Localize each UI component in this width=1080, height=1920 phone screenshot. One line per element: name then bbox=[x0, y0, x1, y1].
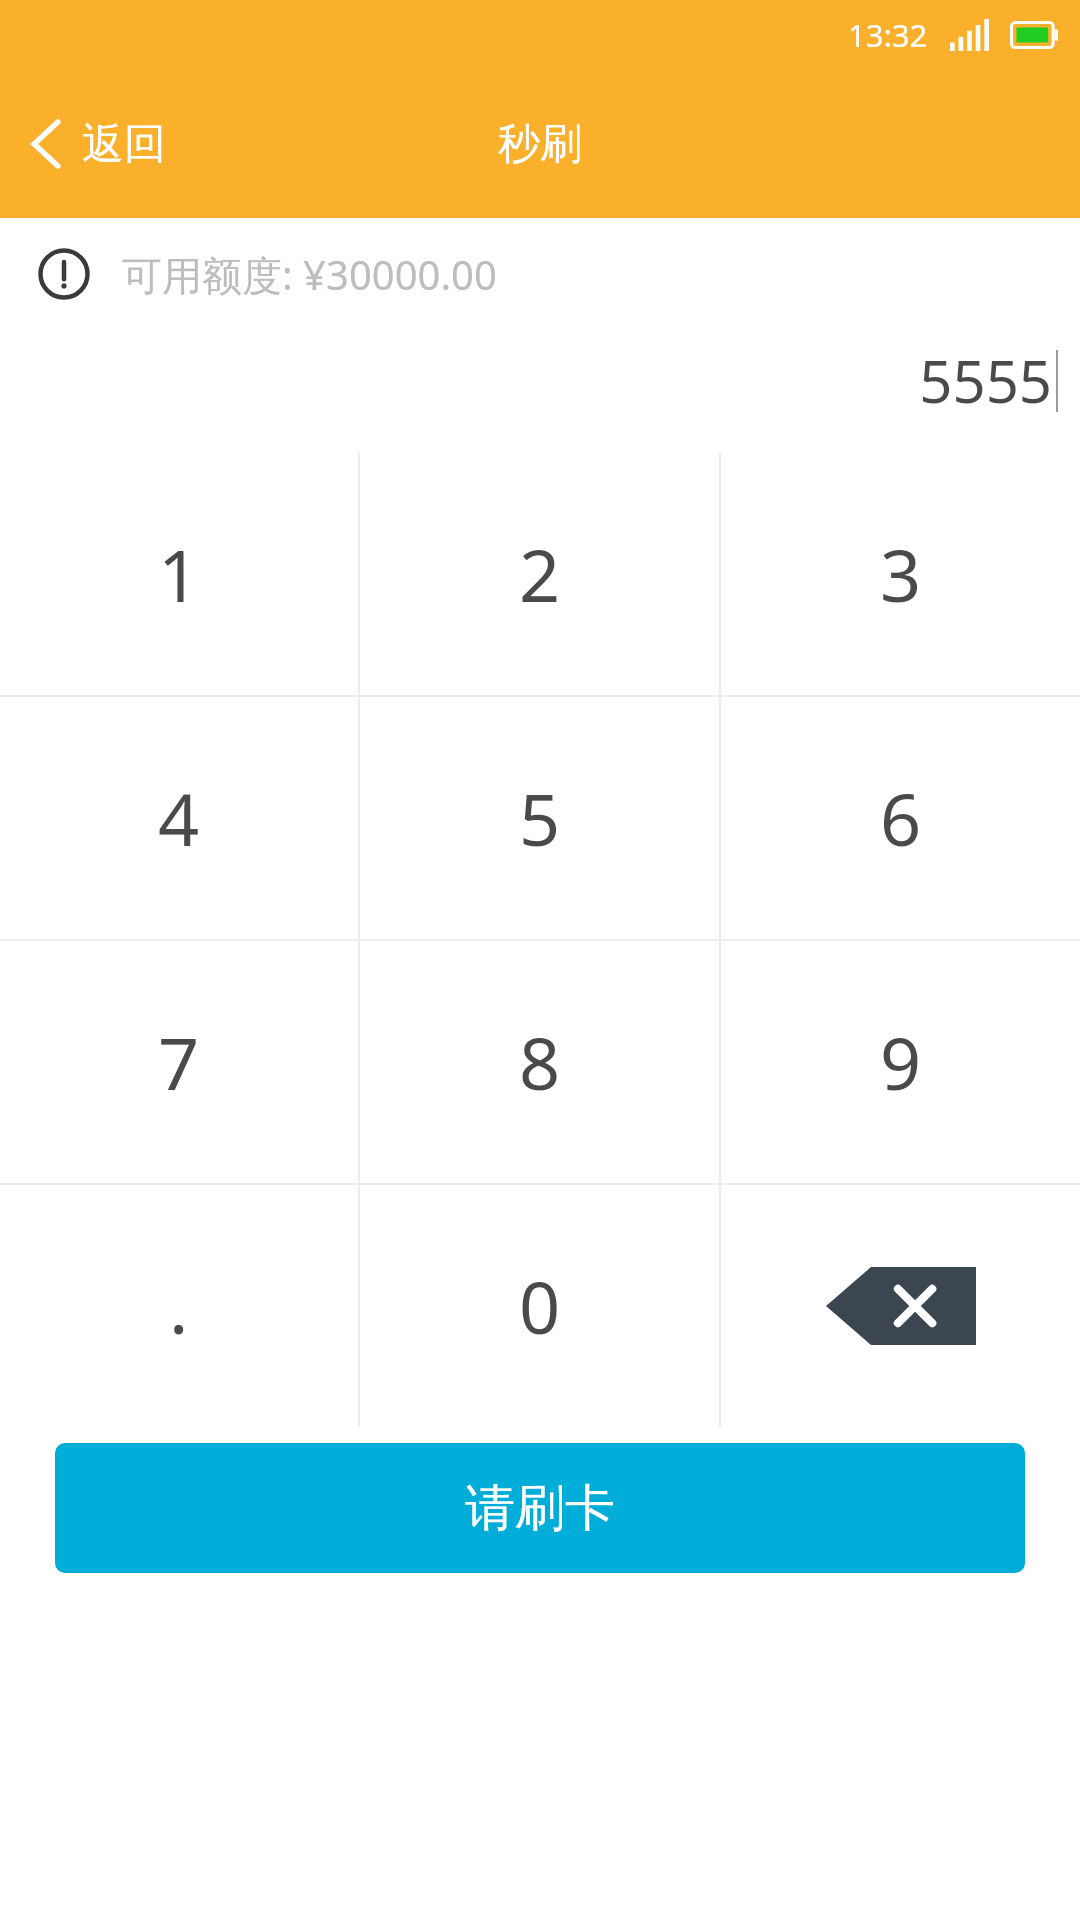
button[interactable]: 2 bbox=[360, 452, 719, 695]
staticText: . bbox=[169, 1257, 189, 1355]
staticText: 返回 bbox=[82, 118, 166, 171]
staticText: 1 bbox=[158, 525, 200, 623]
button[interactable]: 9 bbox=[721, 941, 1080, 1183]
staticText: 13:32 bbox=[848, 14, 928, 56]
staticText: 8 bbox=[519, 1013, 561, 1111]
button[interactable]: 6 bbox=[721, 697, 1080, 939]
button[interactable]: 1 bbox=[0, 452, 358, 695]
button[interactable]: 3 bbox=[721, 452, 1080, 695]
staticText: 6 bbox=[880, 769, 922, 867]
staticText: 3 bbox=[880, 525, 922, 623]
staticText: 4 bbox=[158, 769, 200, 867]
staticText: 0 bbox=[519, 1257, 561, 1355]
staticText: 9 bbox=[880, 1013, 922, 1111]
button[interactable]: . bbox=[0, 1185, 358, 1427]
staticText: 5555 bbox=[919, 341, 1052, 420]
staticText: 7 bbox=[158, 1013, 200, 1111]
button[interactable]: 0 bbox=[360, 1185, 719, 1427]
button[interactable]: 4 bbox=[0, 697, 358, 939]
staticText: 秒刷 bbox=[498, 118, 582, 171]
button[interactable]: 7 bbox=[0, 941, 358, 1183]
button[interactable]: 返回 bbox=[0, 70, 190, 218]
button[interactable]: 8 bbox=[360, 941, 719, 1183]
staticText: 5 bbox=[519, 769, 561, 867]
button[interactable]: 5555 bbox=[0, 330, 1080, 430]
button[interactable]: 5 bbox=[360, 697, 719, 939]
staticText: 请刷卡 bbox=[465, 1477, 615, 1540]
staticText: 可用额度: ¥30000.00 bbox=[122, 247, 497, 302]
button[interactable]: Backspace bbox=[721, 1185, 1080, 1427]
staticText: 2 bbox=[519, 525, 561, 623]
button[interactable]: 请刷卡 bbox=[55, 1443, 1025, 1573]
